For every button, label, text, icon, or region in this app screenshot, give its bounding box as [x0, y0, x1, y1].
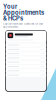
staticText: Your	[3, 3, 17, 10]
staticText: & HCPs	[3, 15, 23, 22]
staticText: Capture notes and questions for your app…	[3, 22, 43, 28]
staticText: Appointments	[3, 9, 44, 16]
